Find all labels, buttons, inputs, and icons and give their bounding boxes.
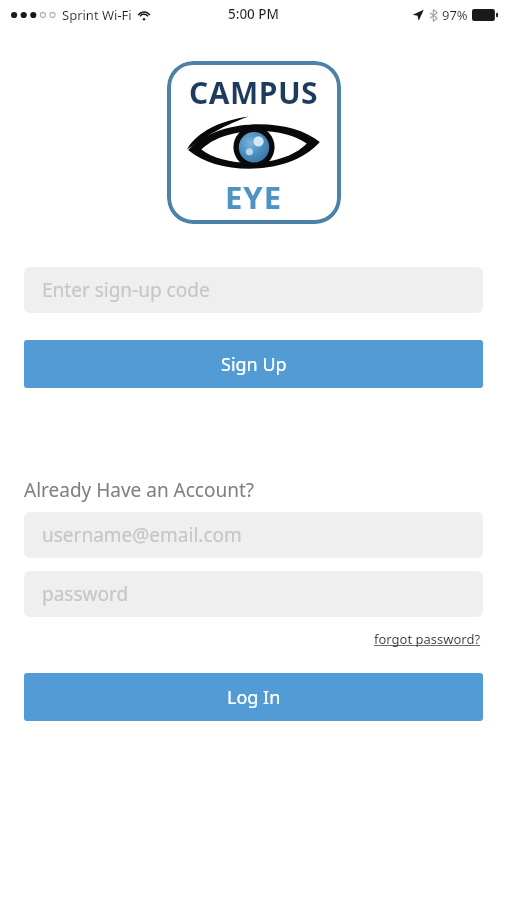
staticText: username@email.com <box>42 522 242 548</box>
staticText: 5:00 PM <box>228 5 279 23</box>
button[interactable]: forgot password? <box>372 628 483 650</box>
button[interactable]: Enter sign-up code <box>24 267 483 313</box>
button[interactable]: Sign Up <box>24 340 483 388</box>
staticText: EYE <box>225 176 283 218</box>
button[interactable]: Log In <box>24 673 483 721</box>
staticText: password <box>42 581 129 607</box>
button[interactable]: Campus Eye logo <box>167 61 341 224</box>
staticText: Sprint Wi-Fi <box>62 6 132 24</box>
staticText: Sign Up <box>221 352 287 377</box>
staticText: CAMPUS <box>189 72 319 113</box>
staticText: forgot password? <box>374 630 481 648</box>
staticText: Already Have an Account? <box>24 477 255 503</box>
button[interactable]: username@email.com <box>24 512 483 558</box>
button[interactable]: password <box>24 571 483 617</box>
staticText: 97% <box>442 6 468 24</box>
staticText: Log In <box>227 685 281 710</box>
staticText: Enter sign-up code <box>42 277 210 303</box>
